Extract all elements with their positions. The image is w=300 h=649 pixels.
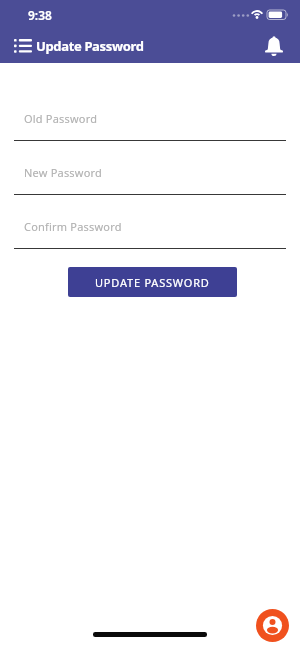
staticText: Confirm Password xyxy=(24,219,122,234)
button[interactable] xyxy=(262,34,286,58)
button[interactable]: UPDATE PASSWORD xyxy=(68,267,237,297)
staticText: Update Password xyxy=(36,37,144,55)
staticText: New Password xyxy=(24,165,103,180)
staticText: Old Password xyxy=(24,111,98,126)
button[interactable] xyxy=(256,609,289,642)
staticText: 9:38 xyxy=(28,7,52,23)
staticText: UPDATE PASSWORD xyxy=(95,275,210,290)
button[interactable] xyxy=(14,34,32,58)
